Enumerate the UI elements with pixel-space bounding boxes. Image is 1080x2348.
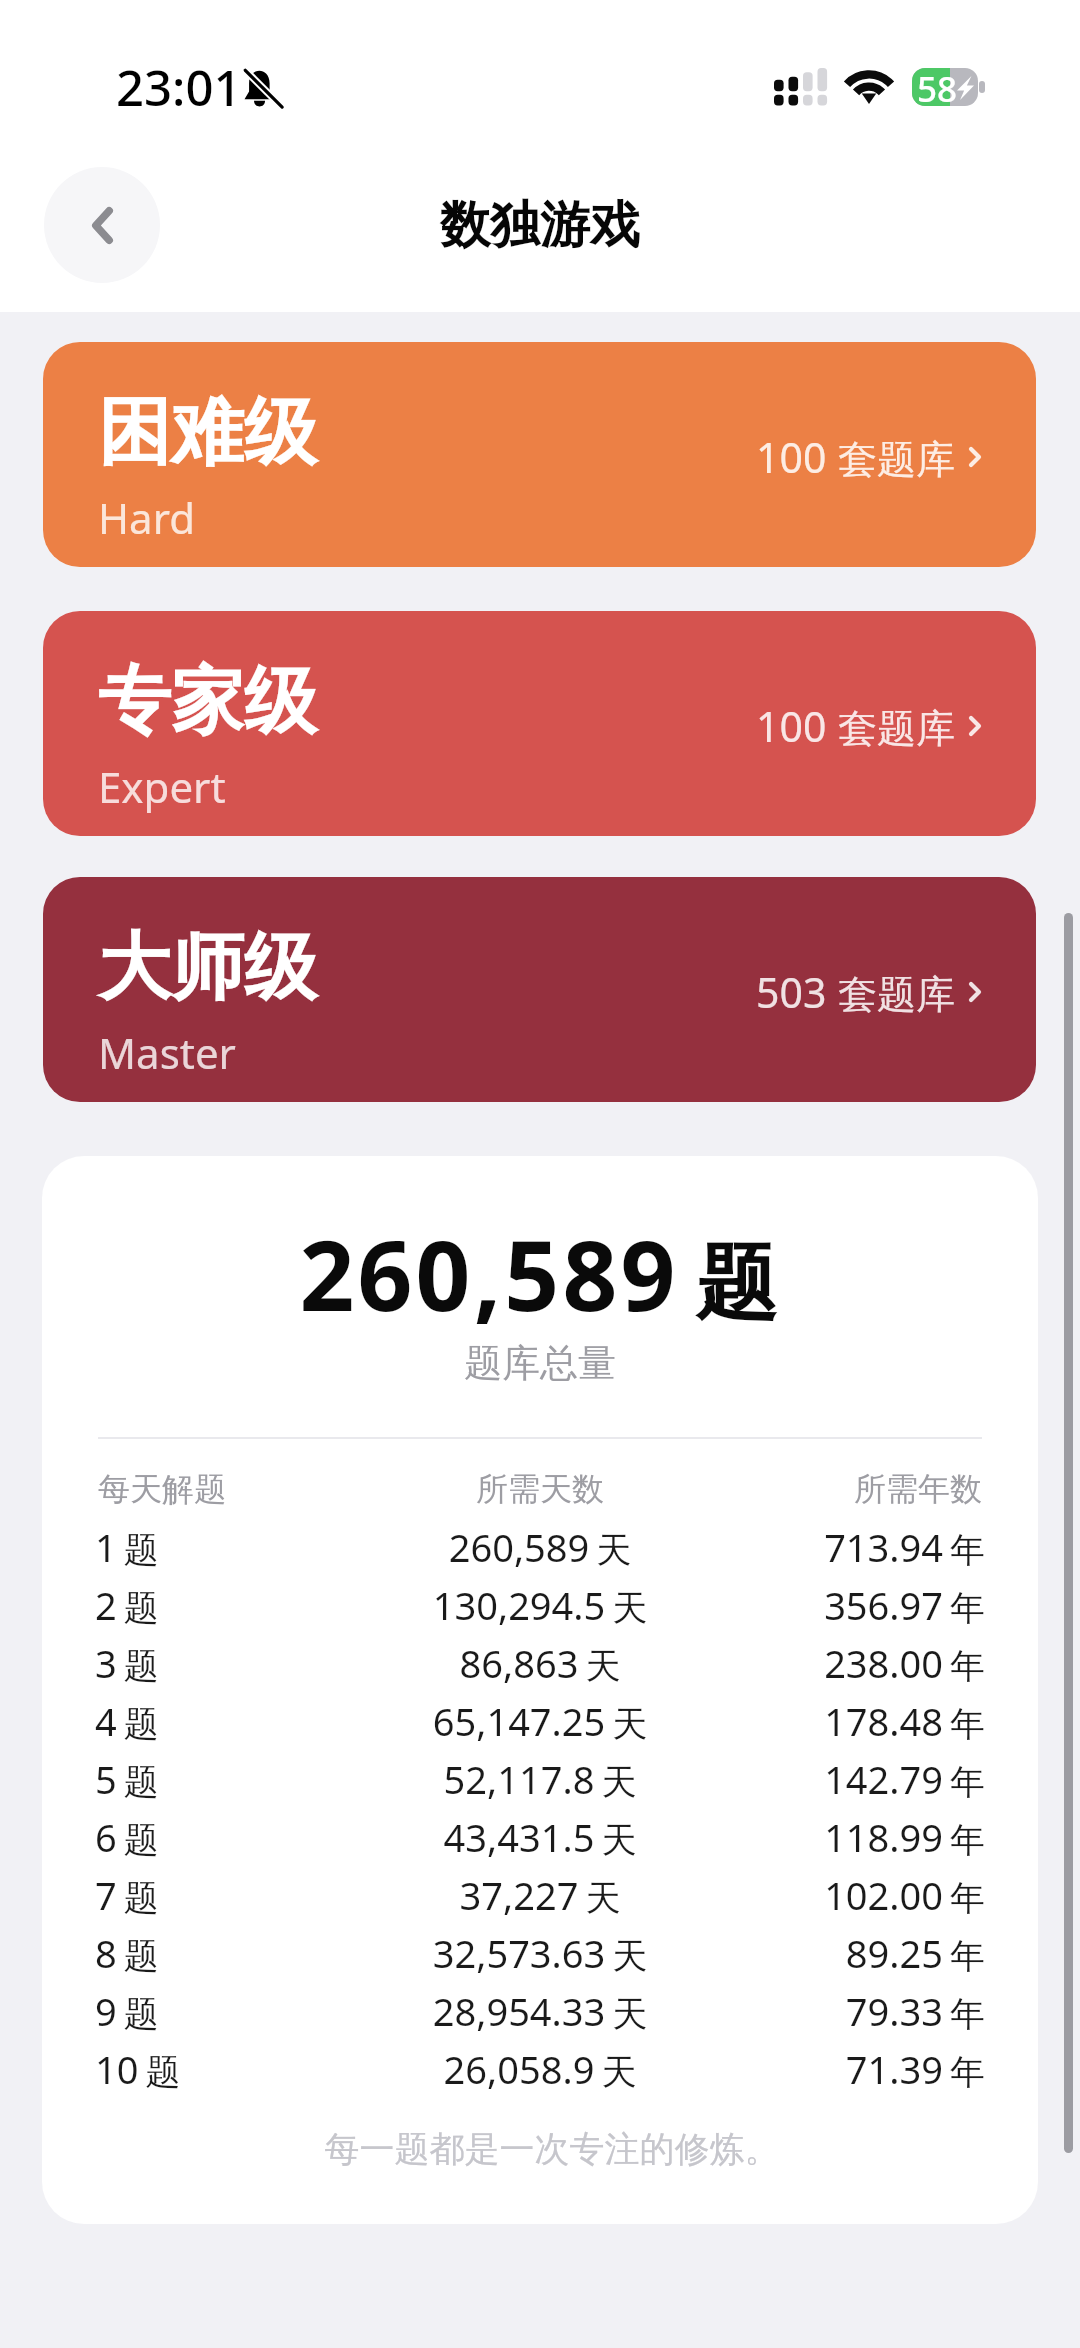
- staticText: 所需天数: [370, 1469, 710, 1509]
- staticText: 1 题: [95, 1521, 369, 1573]
- staticText: 专家级: [98, 656, 317, 748]
- staticText: 26,058.9 天: [369, 2043, 711, 2095]
- staticText: 7 题: [95, 1869, 369, 1921]
- staticText: 9 题: [95, 1985, 369, 2037]
- staticText: 118.99 年: [711, 1811, 985, 1863]
- staticText: 100 套题库: [756, 698, 956, 754]
- staticText: 6 题: [95, 1811, 369, 1863]
- staticText: 每天解题: [98, 1469, 370, 1509]
- staticText: 100 套题库: [756, 429, 956, 485]
- staticText: 260,589 天: [369, 1521, 711, 1573]
- button[interactable]: 专家级: [43, 611, 1036, 836]
- staticText: 3 题: [95, 1637, 369, 1689]
- staticText: 71.39 年: [711, 2043, 985, 2095]
- staticText: Hard: [98, 489, 196, 546]
- staticText: 8 题: [95, 1927, 369, 1979]
- staticText: 23:01: [116, 54, 242, 121]
- staticText: 困难级: [98, 387, 317, 479]
- staticText: 52,117.8 天: [369, 1753, 711, 1805]
- staticText: 260,589 题: [42, 1208, 1038, 1339]
- staticText: 86,863 天: [369, 1637, 711, 1689]
- staticText: 89.25 年: [711, 1927, 985, 1979]
- staticText: 每一题都是一次专注的修炼。: [54, 2127, 1038, 2171]
- staticText: Master: [98, 1024, 236, 1081]
- staticText: 130,294.5 天: [369, 1579, 711, 1631]
- staticText: 43,431.5 天: [369, 1811, 711, 1863]
- staticText: 238.00 年: [711, 1637, 985, 1689]
- staticText: 503 套题库: [756, 964, 956, 1020]
- button[interactable]: 困难级: [43, 342, 1036, 567]
- button[interactable]: 大师级: [43, 877, 1036, 1102]
- staticText: 37,227 天: [369, 1869, 711, 1921]
- staticText: 142.79 年: [711, 1753, 985, 1805]
- staticText: 356.97 年: [711, 1579, 985, 1631]
- staticText: 32,573.63 天: [369, 1927, 711, 1979]
- button[interactable]: Back: [44, 167, 160, 283]
- staticText: 10 题: [95, 2043, 369, 2095]
- staticText: 102.00 年: [711, 1869, 985, 1921]
- staticText: 79.33 年: [711, 1985, 985, 2037]
- staticText: 65,147.25 天: [369, 1695, 711, 1747]
- staticText: 大师级: [98, 922, 317, 1014]
- staticText: 58: [917, 65, 958, 103]
- staticText: 5 题: [95, 1753, 369, 1805]
- staticText: 所需年数: [710, 1469, 982, 1509]
- staticText: 713.94 年: [711, 1521, 985, 1573]
- staticText: 2 题: [95, 1579, 369, 1631]
- staticText: 题库总量: [42, 1339, 1038, 1387]
- staticText: 28,954.33 天: [369, 1985, 711, 2037]
- staticText: Expert: [98, 758, 226, 815]
- staticText: 4 题: [95, 1695, 369, 1747]
- staticText: 178.48 年: [711, 1695, 985, 1747]
- staticText: 数独游戏: [440, 194, 640, 257]
